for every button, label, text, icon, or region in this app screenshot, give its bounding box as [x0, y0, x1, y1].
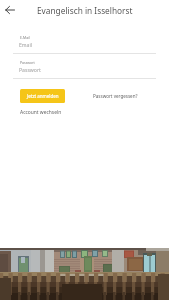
staticText: Account wechseln — [20, 109, 62, 116]
staticText: Evangelisch in Isselhorst — [37, 5, 133, 16]
staticText: Passwort — [20, 60, 35, 65]
button[interactable]: Back — [0, 0, 20, 20]
staticText: Email — [19, 42, 33, 49]
button[interactable]: Jetzt anmelden — [20, 89, 65, 103]
staticText: Passwort — [19, 67, 41, 74]
staticText: E-Mail — [20, 35, 30, 40]
button[interactable]: Account wechseln — [20, 109, 62, 116]
staticText: Passwort vergessen? — [93, 93, 138, 99]
staticText: Jetzt anmelden — [27, 93, 59, 99]
button[interactable]: Passwort vergessen? — [93, 93, 138, 99]
